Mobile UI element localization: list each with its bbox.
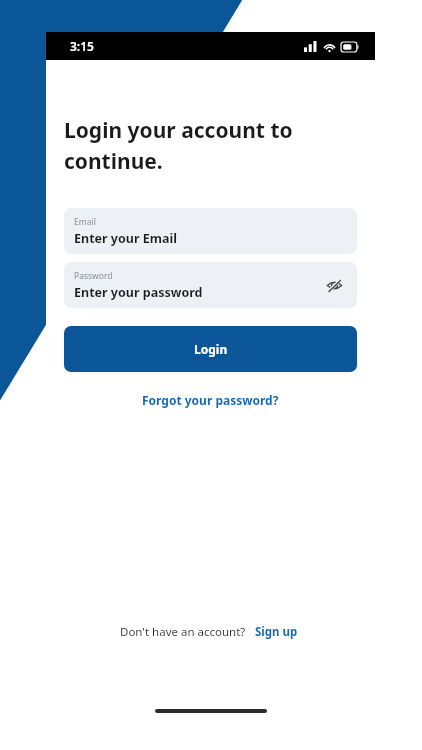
staticText: 3:15 [70, 38, 94, 54]
button[interactable]: Login [64, 326, 357, 372]
staticText: Password [74, 270, 113, 282]
button[interactable]: Email [64, 208, 357, 254]
button[interactable]: Sign up [252, 622, 301, 642]
button[interactable]: Password [64, 262, 357, 308]
staticText: Don't have an account? [120, 624, 246, 640]
staticText: Enter your password [74, 284, 203, 301]
button[interactable]: Show password [321, 272, 347, 298]
staticText: Login [194, 341, 228, 357]
staticText: Enter your Email [74, 230, 177, 247]
staticText: Login your account to continue. [64, 116, 357, 175]
button[interactable]: Forgot your password? [136, 389, 285, 411]
staticText: Email [74, 216, 96, 228]
